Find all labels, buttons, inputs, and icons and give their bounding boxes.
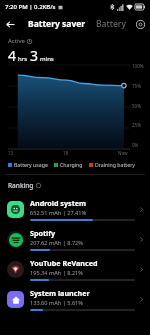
button[interactable]: Settings <box>130 14 150 34</box>
staticText: 3 <box>30 46 39 65</box>
staticText: 75% <box>132 83 141 88</box>
staticText: Battery saver <box>28 18 86 30</box>
staticText: 25% <box>132 122 141 127</box>
button[interactable]: System launcher <box>0 284 150 314</box>
staticText: 13 <box>8 150 14 156</box>
staticText: Ranking <box>8 181 34 190</box>
staticText: 207.62 mAh | 8.72% <box>30 239 83 247</box>
staticText: 4 <box>8 46 17 65</box>
staticText: System launcher <box>30 288 90 298</box>
button[interactable]: Battery <box>95 18 127 30</box>
button[interactable]: Spotify <box>0 224 150 254</box>
staticText: Active <box>8 37 25 45</box>
staticText: Draining battery <box>95 161 135 168</box>
staticText: Battery usage <box>14 161 48 168</box>
staticText: Now <box>118 150 128 156</box>
staticText: 18 <box>63 150 69 156</box>
staticText: 195.34 mAh | 8.21% <box>30 269 83 277</box>
button[interactable]: Android system <box>0 194 150 224</box>
staticText: hrs <box>18 55 28 63</box>
staticText: Battery <box>96 18 126 30</box>
staticText: 133.60 mAh | 5.61% <box>30 299 83 307</box>
staticText: YouTube ReVanced <box>30 258 98 268</box>
staticText: Spotify <box>30 228 56 238</box>
staticText: 7:20 PM | 0.2KB/s <box>5 3 56 11</box>
staticText: 50% <box>132 103 141 108</box>
button[interactable]: Battery saver <box>27 18 87 30</box>
staticText: 0% <box>132 142 139 147</box>
staticText: Android system <box>30 198 87 208</box>
staticText: 652.51 mAh | 27.41% <box>30 209 87 217</box>
button[interactable]: Back <box>0 14 20 34</box>
button[interactable]: YouTube ReVanced <box>0 254 150 284</box>
staticText: mins <box>40 55 54 63</box>
staticText: Charging <box>60 161 83 168</box>
staticText: 100% <box>132 63 144 68</box>
